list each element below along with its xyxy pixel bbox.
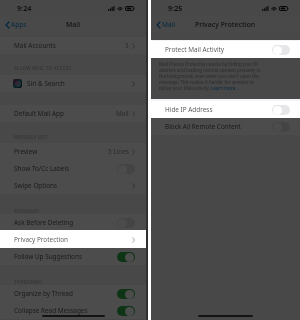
staticText: MESSAGES: [14, 208, 40, 214]
button[interactable]: Swipe Options: [0, 177, 146, 194]
staticText: Ask Before Deleting: [14, 218, 74, 227]
staticText: 9:25: [168, 3, 183, 13]
button[interactable]: Show To/Cc Labels: [0, 160, 146, 177]
staticText: THREADING: [14, 279, 43, 285]
staticText: Mail: [116, 109, 129, 118]
button[interactable]: Ask Before Deleting: [0, 214, 146, 231]
staticText: Siri & Search: [27, 79, 65, 88]
button[interactable]: Mail: [156, 20, 176, 29]
staticText: Follow Up Suggestions: [14, 252, 82, 261]
staticText: Swipe Options: [14, 181, 58, 190]
button[interactable]: On: [117, 252, 135, 262]
button[interactable]: Off: [272, 105, 290, 115]
staticText: 5 Lines: [108, 147, 129, 156]
button[interactable]: Collapse Read Messages: [0, 302, 146, 319]
staticText: Privacy Protection: [195, 20, 256, 29]
staticText: Show To/Cc Labels: [14, 164, 70, 173]
staticText: Organize by Thread: [14, 289, 73, 298]
button[interactable]: Off: [117, 164, 135, 174]
button[interactable]: Mail Accounts: [0, 37, 146, 54]
button[interactable]: Hide IP Address: [151, 101, 300, 118]
button[interactable]: Block All Remote Content: [151, 118, 300, 135]
button[interactable]: Preview: [0, 143, 146, 160]
staticText: Privacy Protection: [14, 235, 68, 244]
button[interactable]: Off: [117, 218, 135, 228]
button[interactable]: On: [117, 289, 135, 299]
staticText: Hide IP Address: [165, 105, 213, 114]
button[interactable]: Off: [272, 45, 290, 55]
button[interactable]: Default Mail App: [0, 105, 146, 122]
staticText: Mail: [66, 20, 81, 29]
button[interactable]: Siri & Search: [0, 75, 146, 92]
staticText: ALLOW MAIL TO ACCESS: [14, 65, 72, 71]
button[interactable]: Off: [272, 122, 290, 132]
button[interactable]: Apps: [5, 20, 27, 29]
staticText: MESSAGE LIST: [14, 134, 48, 140]
staticText: Block All Remote Content: [165, 122, 241, 131]
button[interactable]: Privacy Protection: [0, 231, 146, 248]
staticText: Apps: [11, 20, 27, 29]
staticText: 3: [125, 41, 129, 50]
button[interactable]: Follow Up Suggestions: [0, 248, 146, 265]
staticText: Preview: [14, 147, 38, 156]
staticText: Mail Privacy Protection works by hiding …: [159, 61, 263, 91]
staticText: Default Mail App: [14, 109, 64, 118]
button[interactable]: On: [117, 306, 135, 316]
staticText: Collapse Read Messages: [14, 306, 88, 315]
button[interactable]: Organize by Thread: [0, 285, 146, 302]
staticText: Mail Accounts: [14, 41, 56, 50]
staticText: Mail: [162, 20, 176, 29]
button[interactable]: Protect Mail Activity: [151, 41, 300, 58]
staticText: 9:24: [17, 3, 32, 13]
staticText: Protect Mail Activity: [165, 45, 225, 54]
